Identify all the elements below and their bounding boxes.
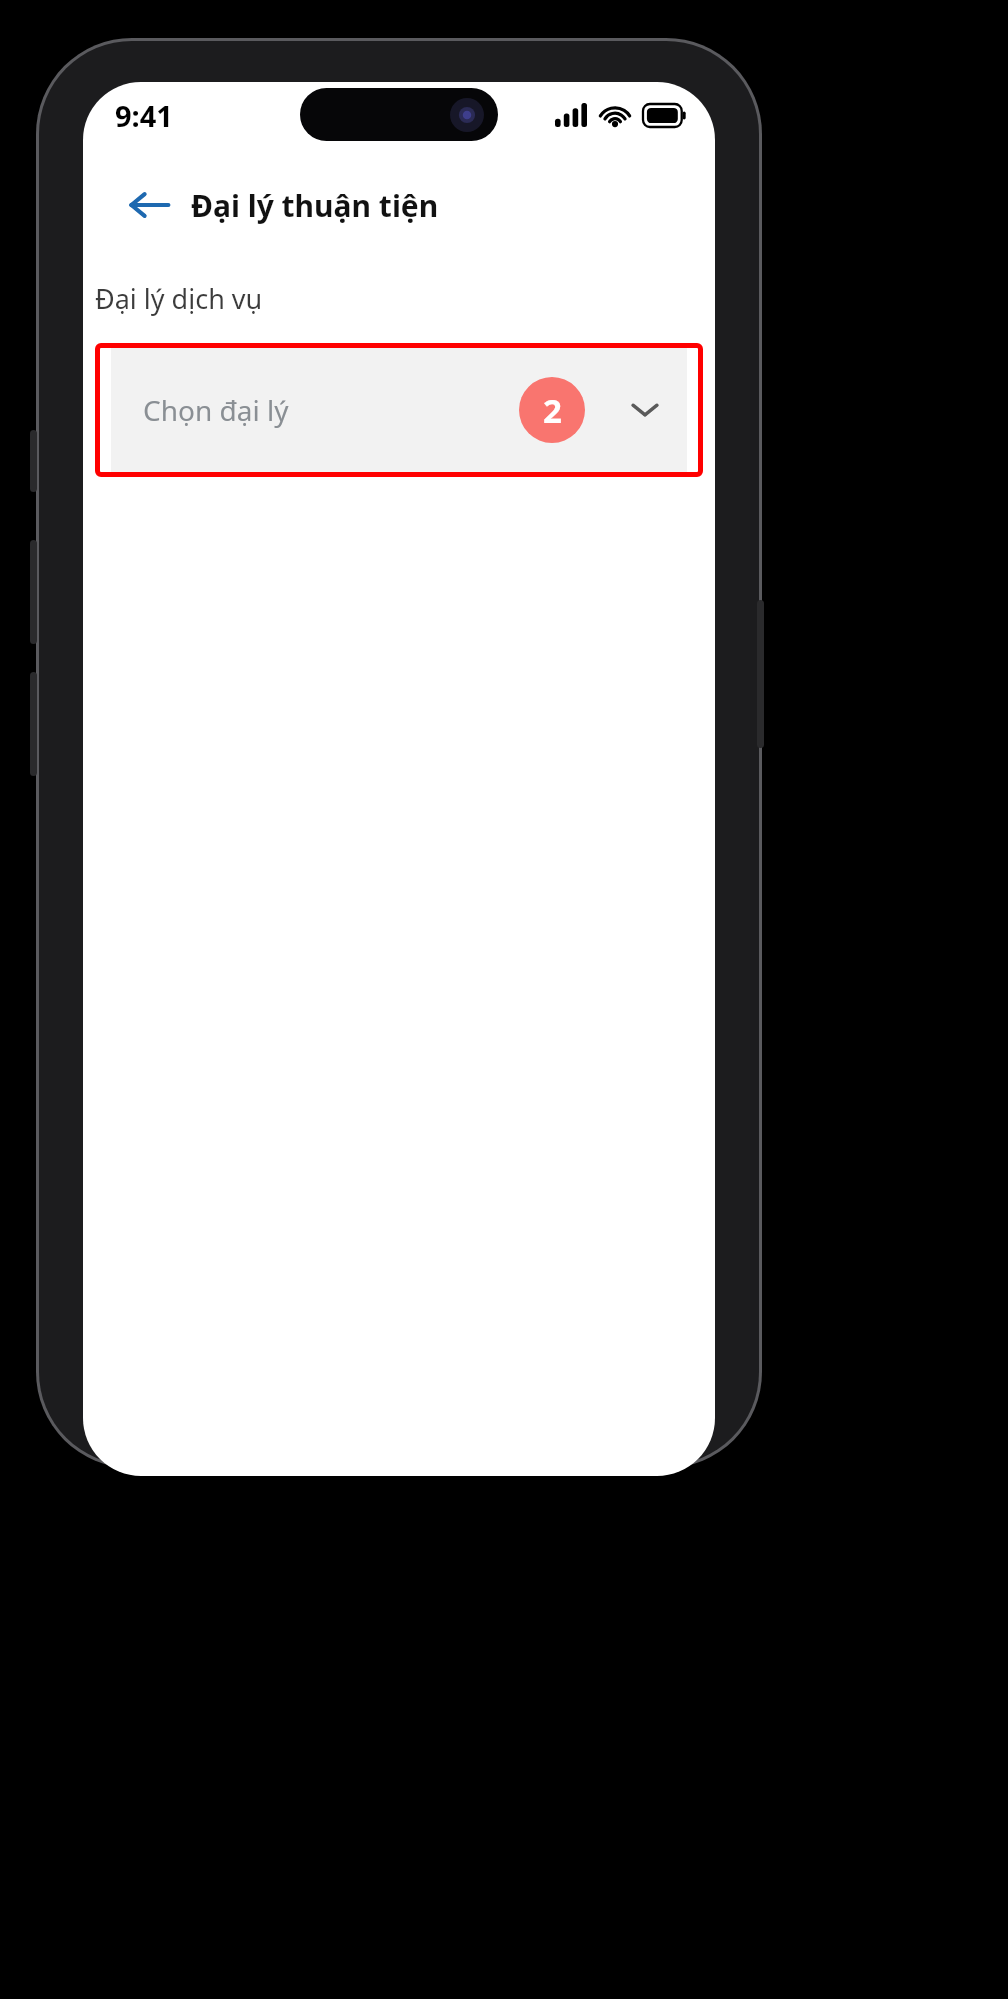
staticText: 9:41 bbox=[115, 96, 173, 135]
staticText: 2 bbox=[543, 388, 562, 433]
staticText: Đại lý thuận tiện bbox=[191, 185, 439, 226]
button[interactable]: Expand dropdown bbox=[621, 386, 669, 434]
button[interactable]: Back bbox=[123, 179, 175, 231]
staticText: Đại lý dịch vụ bbox=[95, 280, 263, 317]
staticText: Chọn đại lý bbox=[143, 391, 289, 429]
button[interactable]: Chọn đại lý bbox=[111, 343, 687, 477]
